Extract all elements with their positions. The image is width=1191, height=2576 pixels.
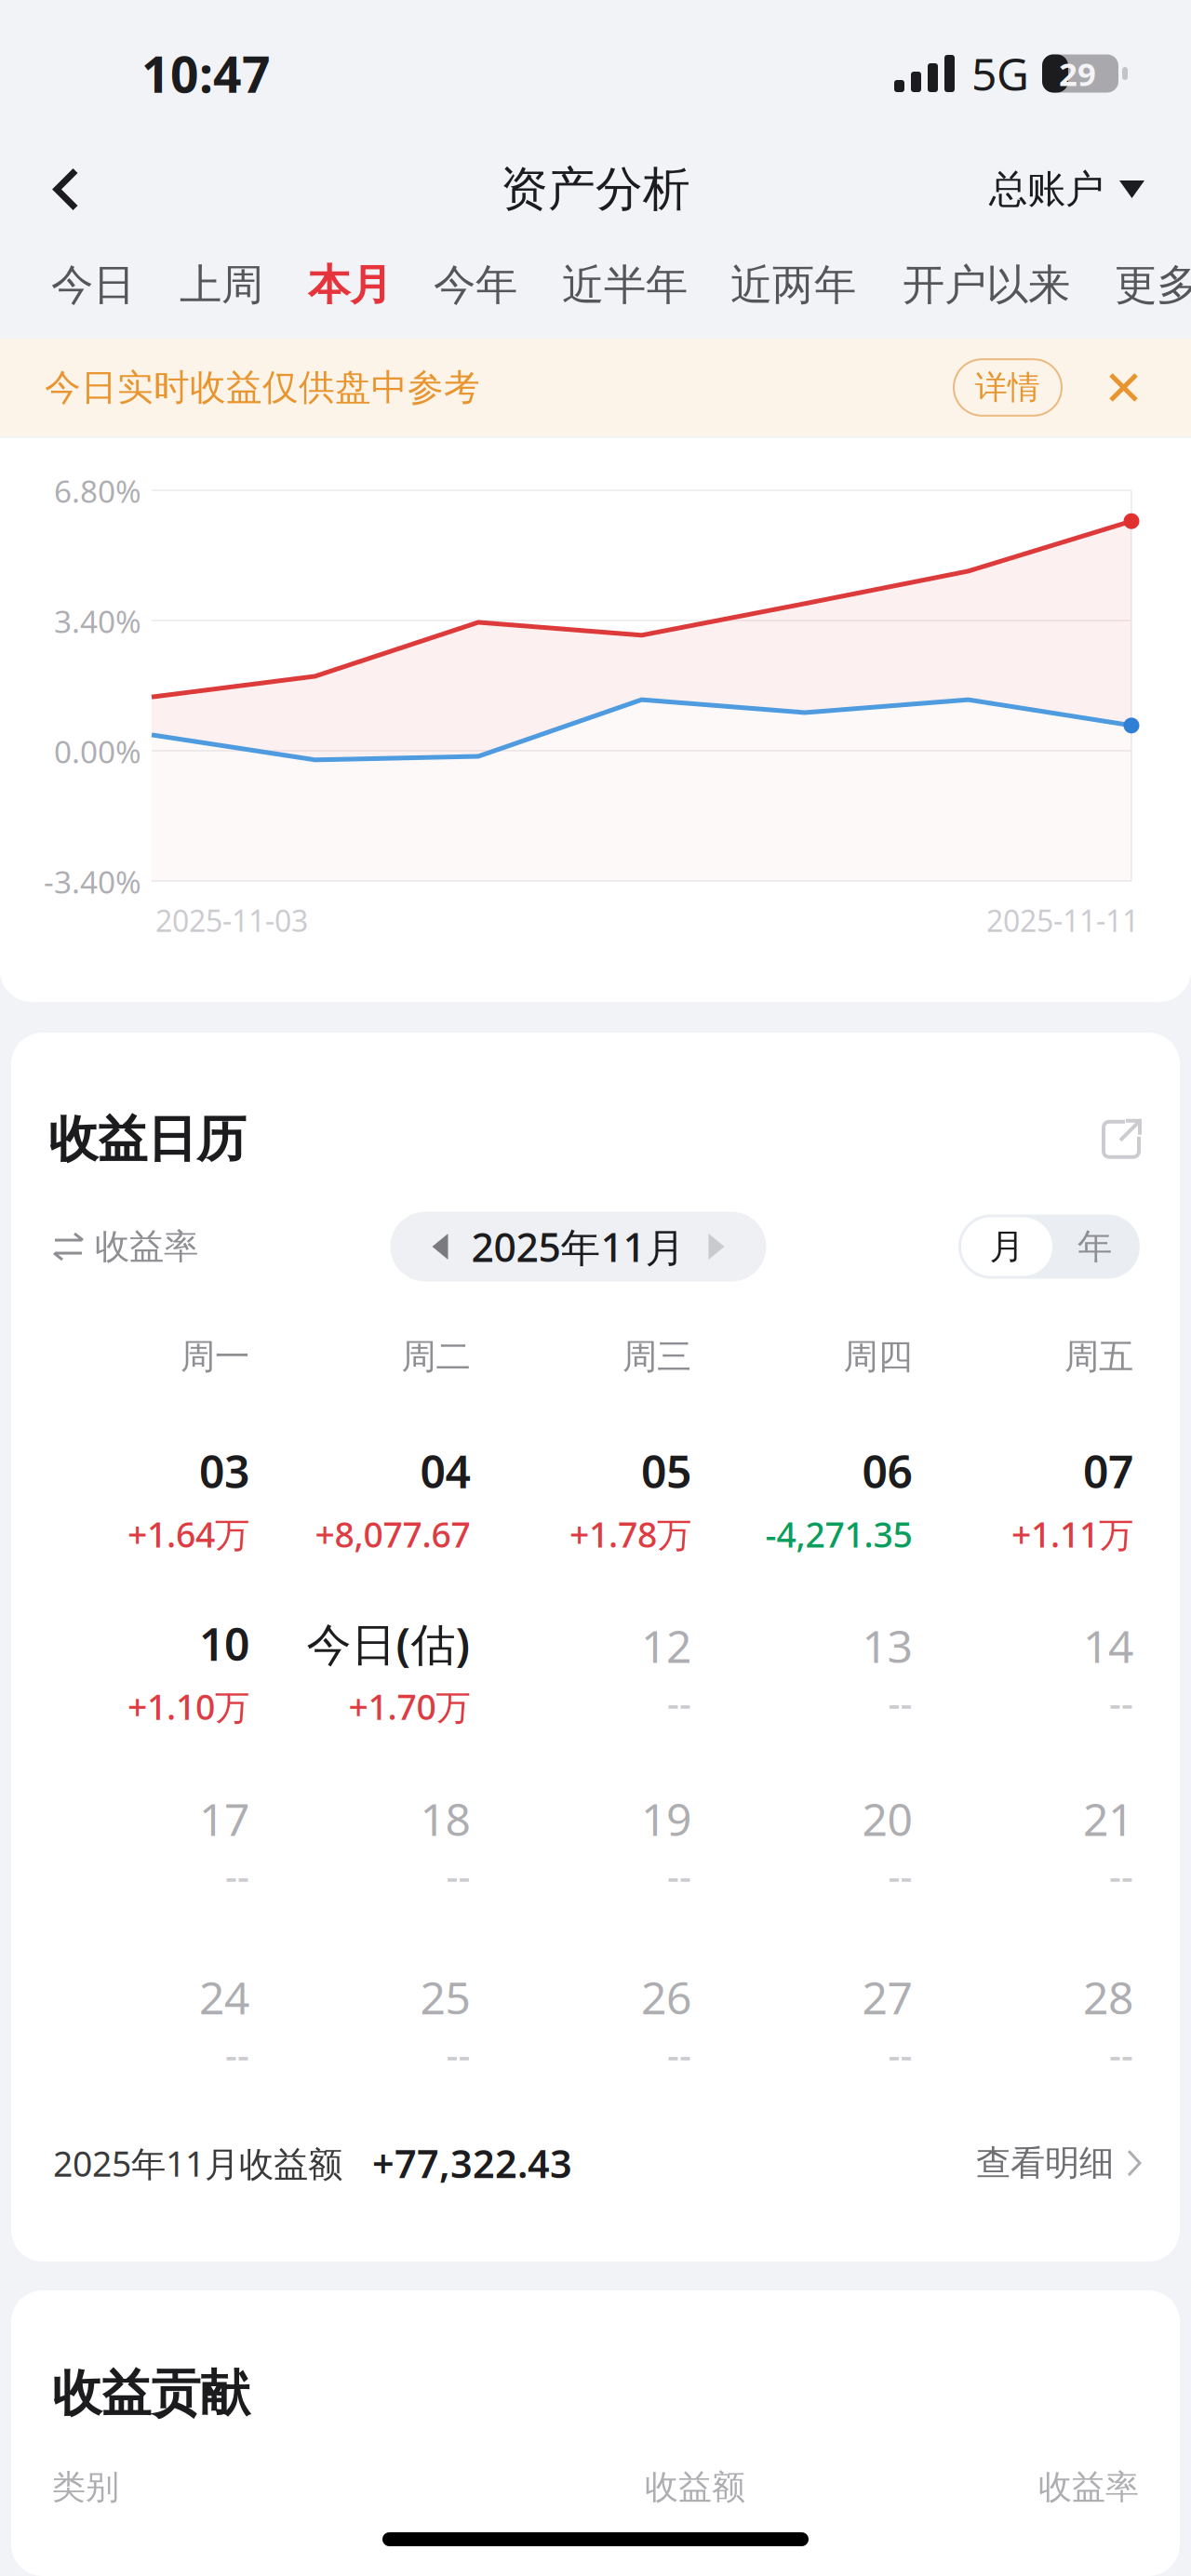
button[interactable]: 关闭 [1099,363,1148,412]
staticText: +1.10万 [127,1683,249,1729]
staticText: 3.40% [54,600,141,642]
staticText: 2025年11月收益额 [53,2140,342,2186]
staticText: 12 [641,1616,691,1675]
staticText: 上周 [180,259,263,311]
staticText: -- [667,1851,691,1900]
staticText: -- [667,2030,691,2079]
button[interactable]: 月 [961,1217,1052,1276]
staticText: +1.11万 [1011,1511,1133,1557]
staticText: 21 [1083,1789,1133,1848]
staticText: 04 [420,1441,470,1501]
button[interactable]: 返回 [0,154,108,225]
staticText: 收益额 [645,2467,745,2508]
staticText: 更多 [1115,259,1191,311]
staticText: 29 [1059,52,1096,95]
staticText: -- [888,1678,912,1727]
staticText: 06 [862,1441,912,1501]
staticText: -- [1109,1851,1133,1900]
staticText: 19 [641,1789,691,1848]
button[interactable]: 上周 [180,246,263,324]
staticText: 03 [199,1441,249,1501]
staticText: 年 [1077,1225,1112,1268]
staticText: 2025-11-03 [155,901,308,940]
staticText: -- [888,1851,912,1900]
button[interactable]: 详情 [954,359,1062,416]
staticText: -- [1109,1678,1133,1727]
button[interactable]: 更多 [1115,246,1191,324]
staticText: 今日(估) [307,1614,470,1673]
staticText: 类别 [52,2467,119,2508]
staticText: 详情 [975,368,1040,407]
staticText: -4,271.35 [765,1511,912,1557]
staticText: +1.64万 [127,1511,249,1557]
staticText: 周一 [181,1335,249,1378]
staticText: 2025-11-11 [986,901,1139,940]
staticText: 14 [1083,1616,1133,1675]
staticText: 收益率 [95,1225,198,1268]
button[interactable]: 开户以来 [903,246,1070,324]
button[interactable]: 近半年 [562,246,688,324]
staticText: 24 [199,1967,249,2027]
staticText: 28 [1083,1967,1133,2027]
staticText: 6.80% [54,470,141,511]
staticText: 资产分析 [501,160,690,218]
staticText: 0.00% [54,731,141,772]
staticText: 17 [199,1789,249,1848]
staticText: -- [1109,2030,1133,2079]
button[interactable]: 今日 [51,246,135,324]
button[interactable]: 近两年 [730,246,856,324]
staticText: -3.40% [44,861,141,902]
button[interactable]: 今年 [434,246,517,324]
staticText: -- [225,2030,249,2079]
staticText: 收益率 [1038,2467,1139,2508]
staticText: 今日实时收益仅供盘中参考 [45,365,480,410]
staticText: 10 [199,1614,249,1673]
staticText: 18 [420,1789,470,1848]
button[interactable]: 收益率 [53,1225,198,1268]
staticText: -- [446,2030,470,2079]
staticText: +8,077.67 [315,1511,470,1557]
staticText: 27 [862,1967,912,2027]
staticText: +1.70万 [348,1683,470,1729]
staticText: +1.78万 [569,1511,691,1557]
staticText: 本月 [308,259,392,311]
staticText: 收益日历 [48,1109,246,1170]
staticText: 查看明细 [976,2142,1114,2184]
staticText: 周三 [622,1335,691,1378]
staticText: 周二 [401,1335,470,1378]
staticText: 26 [641,1967,691,2027]
button[interactable]: 2025年11月 [390,1212,766,1281]
staticText: -- [225,1851,249,1900]
staticText: 07 [1083,1441,1133,1501]
staticText: -- [667,1678,691,1727]
staticText: 开户以来 [903,259,1070,311]
staticText: +77,322.43 [372,2138,572,2189]
staticText: 今日 [51,259,135,311]
staticText: 10:47 [141,41,271,106]
staticText: 近两年 [730,259,856,311]
staticText: 月 [990,1225,1024,1268]
button[interactable]: 本月 [308,246,392,324]
staticText: -- [446,1851,470,1900]
button[interactable]: 总账户 [961,153,1191,226]
staticText: 今年 [434,259,517,311]
staticText: 13 [862,1616,912,1675]
staticText: 2025年11月 [471,1220,685,1273]
staticText: 20 [862,1789,912,1848]
staticText: 周四 [843,1335,912,1378]
staticText: 5G [971,44,1029,103]
staticText: 周五 [1064,1335,1133,1378]
staticText: 近半年 [562,259,688,311]
staticText: -- [888,2030,912,2079]
button[interactable]: 展开收益日历 [1100,1118,1143,1161]
staticText: 收益贡献 [52,2363,249,2424]
staticText: 05 [641,1441,691,1501]
staticText: 总账户 [989,166,1104,213]
button[interactable]: 2025年11月收益额 [11,2138,1180,2189]
staticText: 25 [420,1967,470,2027]
button[interactable]: 年 [1052,1217,1137,1276]
